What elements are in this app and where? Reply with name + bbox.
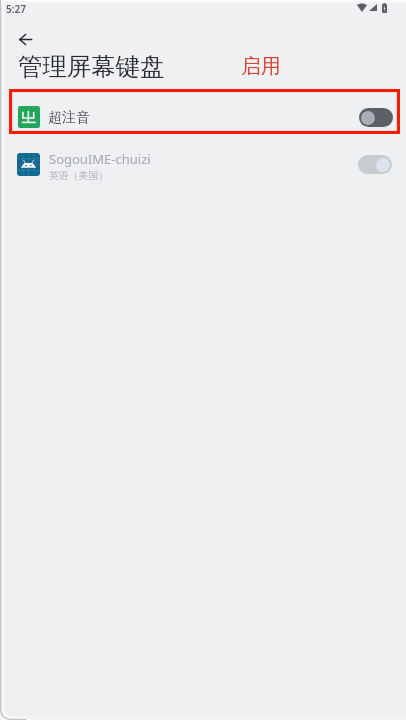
staticText: 超注音 (48, 109, 90, 127)
staticText: 启用 (241, 54, 281, 79)
button[interactable]: Disabled (359, 108, 393, 127)
staticText: 管理屏幕键盘 (18, 52, 165, 83)
staticText: SogouIME-chuizi (49, 150, 151, 168)
button[interactable]: 超注音 (0, 94, 406, 140)
staticText: 英语（美国） (49, 170, 108, 182)
button[interactable]: Enabled (358, 155, 392, 174)
staticText: 5:27 (6, 2, 26, 16)
button[interactable]: 启用 (233, 48, 289, 85)
button[interactable]: SogouIME-chuizi (0, 141, 406, 187)
button[interactable]: Back (8, 22, 42, 56)
